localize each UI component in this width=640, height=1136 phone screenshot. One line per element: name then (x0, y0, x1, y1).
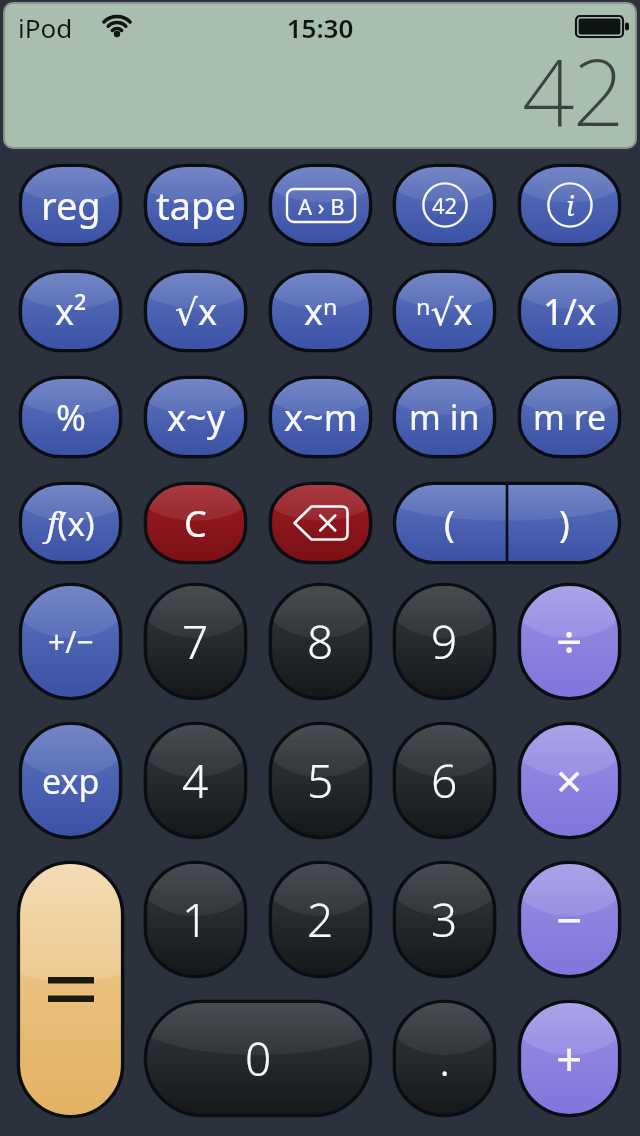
button[interactable]: − (517, 860, 622, 979)
button[interactable]: xⁿ (268, 269, 373, 353)
button[interactable]: ( (392, 481, 622, 565)
staticText: A › B (298, 191, 345, 221)
button[interactable]: 9 (392, 582, 497, 701)
button[interactable]: 1/x (517, 269, 622, 353)
staticText: tape (156, 179, 236, 231)
button[interactable]: A › B (268, 163, 373, 247)
staticText: + (556, 1027, 583, 1090)
staticText: ( (444, 499, 455, 548)
staticText: 9 (431, 610, 458, 673)
button[interactable]: 8 (268, 582, 373, 701)
button[interactable]: 7 (143, 582, 248, 701)
staticText: × (556, 749, 583, 812)
staticText: 0 (245, 1027, 272, 1090)
staticText: 6 (431, 749, 458, 812)
button[interactable] (268, 481, 373, 565)
staticText: x² (55, 287, 87, 336)
button[interactable]: 2 (268, 860, 373, 979)
button[interactable]: + (517, 999, 622, 1118)
staticText: 2 (307, 888, 334, 951)
button[interactable]: x~y (143, 375, 248, 459)
staticText: x~y (167, 393, 225, 442)
button[interactable]: % (18, 375, 123, 459)
button[interactable]: reg (18, 163, 123, 247)
staticText: − (556, 888, 583, 951)
staticText: 42 (522, 28, 623, 147)
button[interactable]: +/− (18, 582, 123, 701)
button[interactable]: × (517, 721, 622, 840)
staticText: 1 (182, 888, 209, 951)
button[interactable]: 5 (268, 721, 373, 840)
staticText: 1/x (543, 287, 597, 336)
staticText: +/− (48, 621, 94, 662)
staticText: xⁿ (304, 287, 338, 336)
staticText: % (56, 393, 86, 442)
staticText: C (184, 499, 207, 548)
staticText: 42 (432, 190, 458, 220)
staticText: x~m (284, 393, 358, 442)
button[interactable]: ⁿ√x (392, 269, 497, 353)
button[interactable]: 0 (143, 999, 373, 1118)
button[interactable]: exp (18, 721, 123, 840)
staticText: 5 (307, 749, 334, 812)
staticText: ) (559, 499, 570, 548)
staticText: iPod (18, 10, 73, 45)
button[interactable]: i (517, 163, 622, 247)
staticText: . (439, 1027, 451, 1090)
staticText: ⁿ√x (416, 287, 473, 336)
button[interactable]: x² (18, 269, 123, 353)
button[interactable]: m re (517, 375, 622, 459)
staticText: m in (409, 394, 480, 440)
staticText: 4 (182, 749, 209, 812)
button[interactable] (16, 860, 125, 1119)
button[interactable]: tape (143, 163, 248, 247)
button[interactable]: 1 (143, 860, 248, 979)
staticText: m re (533, 394, 607, 440)
button[interactable]: m in (392, 375, 497, 459)
button[interactable]: 4 (143, 721, 248, 840)
button[interactable]: x~m (268, 375, 373, 459)
staticText: reg (41, 179, 101, 231)
staticText: exp (42, 758, 100, 804)
button[interactable]: ÷ (517, 582, 622, 701)
staticText: 7 (182, 610, 209, 673)
button[interactable]: 6 (392, 721, 497, 840)
staticText: 8 (307, 610, 334, 673)
button[interactable]: 3 (392, 860, 497, 979)
button[interactable]: f(x) (18, 481, 123, 565)
button[interactable]: . (392, 999, 497, 1118)
staticText: f(x) (47, 501, 95, 546)
button[interactable]: 42 (392, 163, 497, 247)
button[interactable]: C (143, 481, 248, 565)
staticText: 3 (431, 888, 458, 951)
staticText: i (566, 186, 575, 224)
staticText: 15:30 (5, 10, 635, 45)
staticText: ÷ (556, 610, 583, 673)
button[interactable]: √x (143, 269, 248, 353)
staticText: √x (175, 287, 217, 336)
